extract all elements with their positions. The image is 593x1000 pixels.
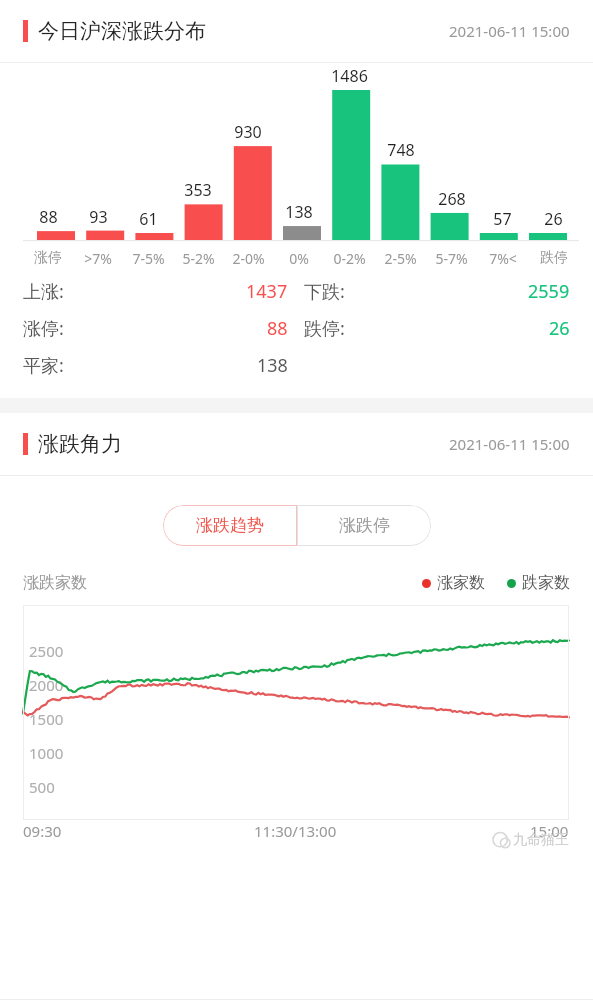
staticText: 平家: — [23, 353, 64, 378]
staticText: 涨跌家数 — [23, 573, 87, 593]
staticText: 2-5% — [384, 249, 417, 268]
staticText: 15:00 — [530, 821, 569, 841]
staticText: 1486 — [331, 65, 368, 87]
staticText: 2000 — [29, 675, 64, 695]
staticText: 九命猫王 — [513, 831, 569, 849]
staticText: 09:30 — [23, 821, 62, 841]
other: WeChat watermark — [493, 831, 569, 849]
staticText: 2559 — [528, 279, 570, 304]
staticText: 涨跌停 — [339, 515, 390, 536]
staticText: 88 — [39, 206, 58, 228]
staticText: 7-5% — [132, 249, 165, 268]
staticText: 88 — [267, 316, 288, 341]
button[interactable]: 涨跌停 — [297, 505, 431, 546]
staticText: 涨停 — [34, 249, 62, 267]
staticText: 5-7% — [435, 249, 468, 268]
staticText: 748 — [387, 139, 415, 161]
staticText: 930 — [234, 121, 262, 143]
staticText: 跌家数 — [522, 573, 570, 593]
staticText: 26 — [544, 208, 563, 230]
staticText: 1500 — [29, 709, 64, 729]
staticText: 跌停: — [304, 316, 345, 341]
staticText: 138 — [285, 201, 313, 223]
staticText: 涨跌角力 — [38, 431, 122, 457]
staticText: 11:30/13:00 — [254, 821, 337, 841]
staticText: 138 — [257, 353, 288, 378]
staticText: 2021-06-11 15:00 — [449, 434, 570, 454]
staticText: 268 — [438, 188, 466, 210]
staticText: 2-0% — [232, 249, 265, 268]
staticText: 2021-06-11 15:00 — [449, 21, 570, 41]
staticText: 0% — [289, 249, 309, 268]
staticText: 上涨: — [23, 279, 64, 304]
staticText: 7%< — [489, 249, 517, 268]
staticText: 涨家数 — [437, 573, 485, 593]
staticText: 353 — [184, 179, 212, 201]
button[interactable]: 今日沪深涨跌分布 — [0, 0, 593, 62]
staticText: >7% — [84, 249, 112, 268]
staticText: 今日沪深涨跌分布 — [38, 18, 206, 44]
staticText: 500 — [29, 777, 55, 797]
staticText: 0-2% — [333, 249, 366, 268]
staticText: 涨跌趋势 — [196, 515, 264, 536]
staticText: 涨停: — [23, 316, 64, 341]
staticText: 57 — [493, 208, 512, 230]
staticText: 1000 — [29, 743, 64, 763]
staticText: 5-2% — [182, 249, 215, 268]
staticText: 1437 — [246, 279, 288, 304]
button[interactable]: 涨跌趋势 — [163, 505, 297, 546]
staticText: 跌停 — [540, 249, 568, 267]
button[interactable]: 涨跌角力 — [0, 413, 593, 475]
staticText: 下跌: — [304, 279, 345, 304]
staticText: 93 — [89, 206, 108, 228]
staticText: 2500 — [29, 641, 64, 661]
staticText: 26 — [549, 316, 570, 341]
staticText: 61 — [139, 208, 158, 230]
